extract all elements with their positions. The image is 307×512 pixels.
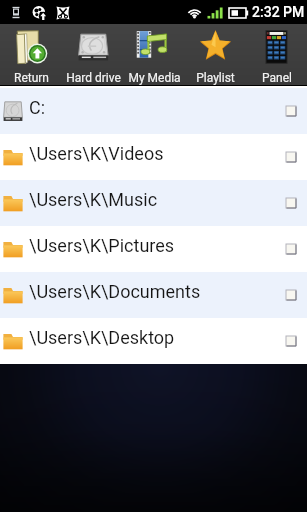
button[interactable]: Select C:	[284, 104, 298, 118]
button[interactable]: \Users\K\Desktop	[0, 318, 307, 364]
button[interactable]: C:	[0, 88, 307, 134]
button[interactable]: \Users\K\Videos	[0, 134, 307, 180]
button[interactable]: Playlist	[185, 24, 246, 85]
button[interactable]: Select \Users\K\Desktop	[284, 334, 298, 348]
button[interactable]: \Users\K\Pictures	[0, 226, 307, 272]
button[interactable]: My Media	[124, 24, 185, 85]
staticText: Playlist	[196, 71, 235, 85]
staticText: \Users\K\Desktop	[29, 327, 175, 348]
staticText: \Users\K\Documents	[29, 281, 201, 302]
button[interactable]: \Users\K\Documents	[0, 272, 307, 318]
staticText: C:	[29, 97, 46, 118]
staticText: My Media	[128, 71, 181, 85]
button[interactable]: Return	[0, 24, 62, 85]
staticText: Hard drive	[66, 71, 121, 85]
button[interactable]: Select \Users\K\Pictures	[284, 242, 298, 256]
staticText: 2:32 PM	[252, 4, 305, 20]
button[interactable]: Select \Users\K\Music	[284, 196, 298, 210]
staticText: \Users\K\Pictures	[29, 235, 175, 256]
button[interactable]: \Users\K\Music	[0, 180, 307, 226]
button[interactable]: Hard drive	[62, 24, 124, 85]
button[interactable]: Panel	[246, 24, 307, 85]
staticText: \Users\K\Videos	[29, 143, 164, 164]
staticText: \Users\K\Music	[29, 189, 158, 210]
staticText: Return	[14, 71, 49, 85]
staticText: Panel	[262, 71, 292, 85]
button[interactable]: Select \Users\K\Documents	[284, 288, 298, 302]
button[interactable]: Select \Users\K\Videos	[284, 150, 298, 164]
